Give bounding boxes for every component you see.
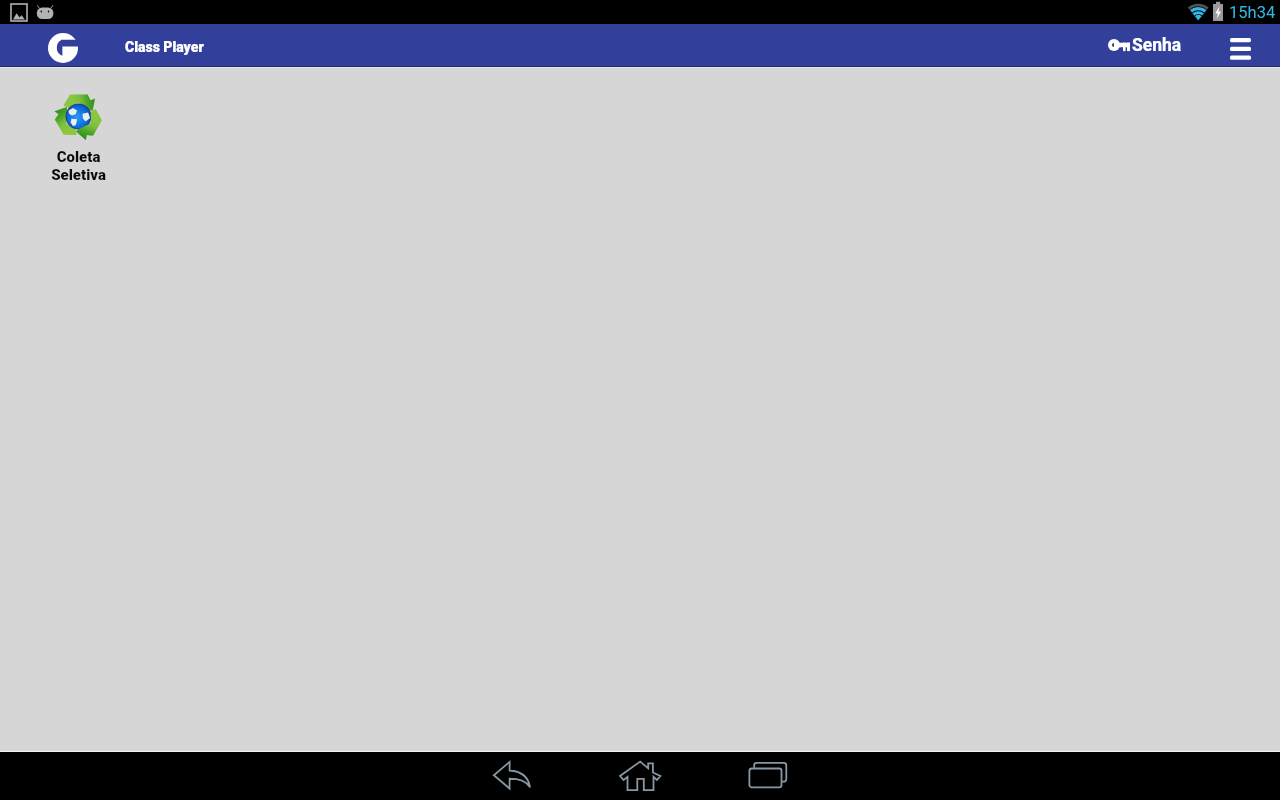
button[interactable]: Recent apps [744, 752, 792, 800]
button[interactable]: Coleta Seletiva [26, 93, 130, 184]
button[interactable]: Home [616, 752, 664, 800]
staticText: Coleta Seletiva [51, 148, 106, 184]
button[interactable]: Menu [1217, 24, 1264, 67]
staticText: 15h34 [1229, 3, 1276, 22]
staticText: Class Player [125, 39, 204, 55]
staticText: Senha [1132, 35, 1182, 56]
button[interactable]: Logo [43, 28, 83, 68]
button[interactable]: Senha [1103, 24, 1185, 67]
button[interactable]: Back [488, 752, 536, 800]
